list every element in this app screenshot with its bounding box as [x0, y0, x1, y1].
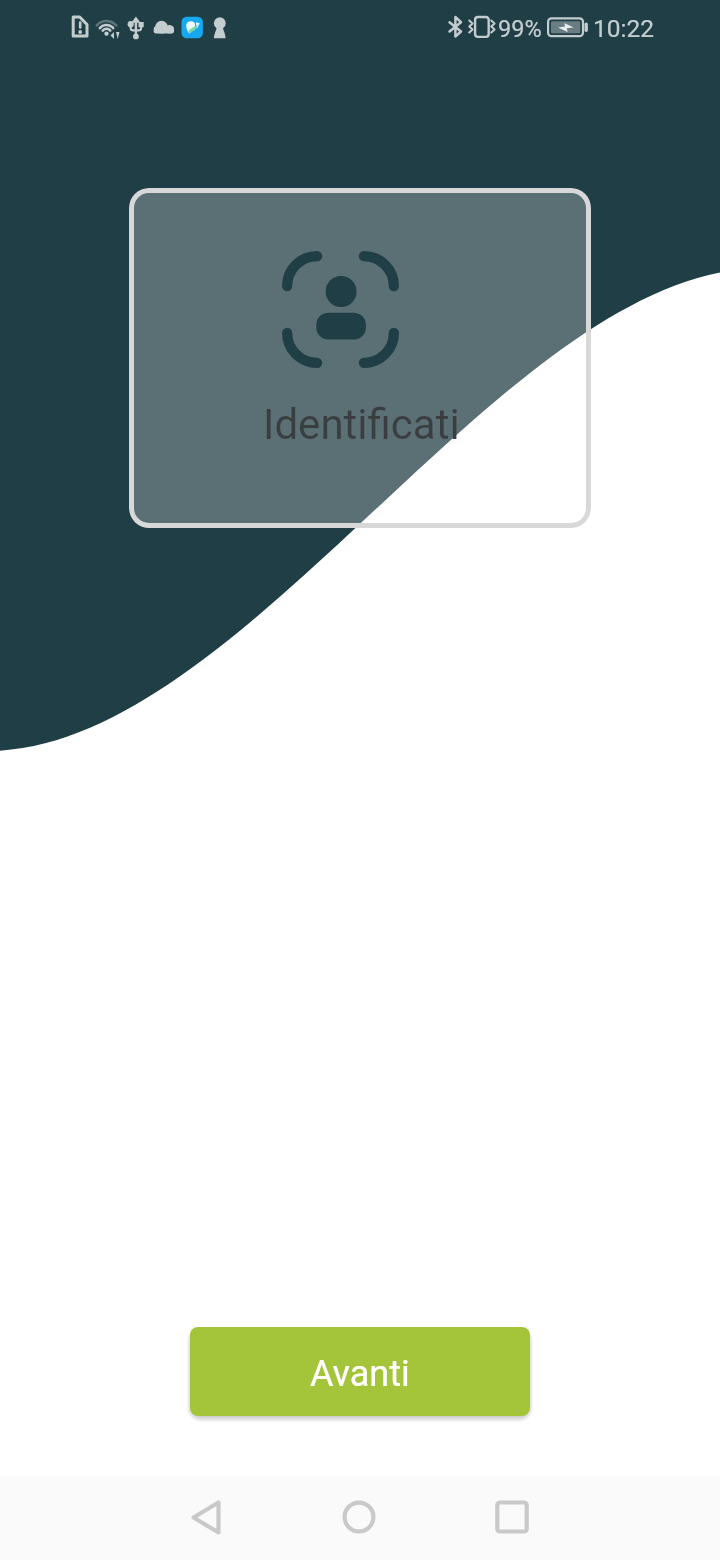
button[interactable]: Avanti	[190, 1327, 530, 1416]
staticText: Identificati	[263, 400, 460, 449]
staticText: 10:22	[593, 14, 655, 43]
button[interactable]: Back	[146, 1475, 266, 1559]
button[interactable]: Identificati	[129, 188, 591, 528]
staticText: Avanti	[310, 1353, 410, 1395]
staticText: 99%	[498, 15, 542, 43]
button[interactable]: Home	[299, 1475, 419, 1559]
button[interactable]: Recent apps	[452, 1475, 572, 1559]
